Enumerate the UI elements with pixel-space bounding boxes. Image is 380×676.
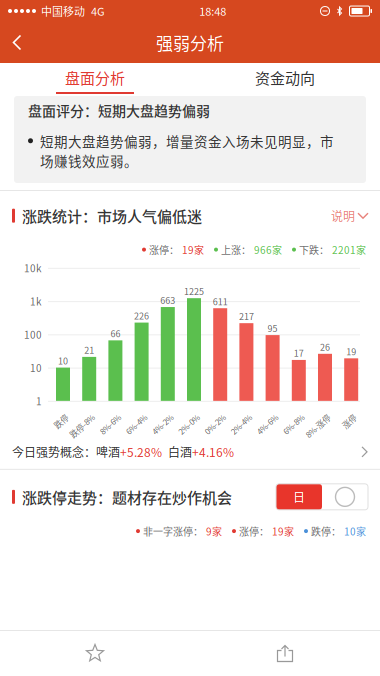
staticText: 95	[268, 322, 278, 335]
button[interactable]: Share	[263, 631, 307, 675]
staticText: 涨停：	[239, 524, 269, 538]
staticText: 10	[58, 354, 68, 367]
staticText: 663	[160, 293, 175, 306]
staticText: 19	[346, 345, 356, 358]
staticText: 涨停	[339, 410, 355, 422]
button[interactable]: 说明	[331, 201, 368, 230]
staticText: 10	[30, 360, 42, 375]
staticText: 10家	[344, 524, 366, 538]
staticText: 21	[84, 343, 94, 356]
staticText: 上涨：	[221, 242, 251, 257]
staticText: 资金动向	[255, 67, 315, 88]
staticText: 17	[294, 346, 304, 359]
staticText: 100	[24, 327, 42, 342]
staticText: 短期大盘趋势偏弱，增量资金入场未见明显，市场赚钱效应弱。	[40, 131, 334, 170]
staticText: 跌停	[51, 410, 67, 422]
staticText: 8%-涨停	[299, 410, 329, 422]
staticText: 8%-6%	[94, 410, 119, 422]
staticText: 19家	[182, 242, 204, 257]
staticText: 1225	[184, 285, 204, 298]
button[interactable]: Back	[0, 23, 34, 61]
staticText: 4%-6%	[252, 410, 277, 422]
staticText: 66	[110, 327, 120, 340]
staticText: 涨跌停走势：题材存在炒作机会	[22, 486, 232, 508]
staticText: 18:48	[199, 3, 226, 19]
staticText: 4%-2%	[147, 410, 172, 422]
staticText: 19家	[272, 524, 294, 538]
staticText: 611	[213, 295, 228, 308]
staticText: 白酒	[162, 443, 192, 461]
button[interactable]: 今日强势概念：	[0, 435, 380, 469]
staticText: 217	[239, 310, 254, 323]
button[interactable]: Refresh	[322, 484, 368, 510]
staticText: +5.28%	[120, 443, 162, 461]
staticText: 4G	[91, 3, 105, 19]
staticText: 强弱分析	[156, 30, 224, 55]
button[interactable]: Favorite	[73, 631, 117, 675]
staticText: 说明	[331, 207, 355, 224]
staticText: 2%-0%	[173, 410, 198, 422]
staticText: 1k	[30, 294, 42, 308]
staticText: 跌停-8%	[63, 410, 93, 422]
staticText: 盘面分析	[65, 67, 125, 88]
staticText: 中国移动	[41, 3, 85, 19]
staticText: 涨停：	[149, 242, 179, 257]
staticText: 1	[36, 394, 42, 408]
staticText: 6%-8%	[278, 410, 303, 422]
staticText: 今日强势概念：	[12, 443, 96, 461]
staticText: 10k	[24, 261, 42, 275]
staticText: 966家	[254, 242, 282, 257]
staticText: 日	[293, 488, 305, 506]
button[interactable]: 日	[276, 484, 322, 510]
button[interactable]: 盘面分析	[0, 63, 190, 96]
staticText: +4.16%	[192, 443, 234, 461]
staticText: 啤酒	[96, 443, 120, 461]
staticText: 226	[134, 309, 149, 322]
staticText: 2%-4%	[225, 410, 250, 422]
button[interactable]: 资金动向	[190, 63, 380, 96]
staticText: 2201家	[332, 242, 366, 257]
staticText: 9家	[206, 524, 222, 538]
staticText: 涨跌统计：市场人气偏低迷	[22, 205, 202, 226]
staticText: 6%-4%	[121, 410, 146, 422]
staticText: 非一字涨停：	[143, 524, 203, 538]
staticText: 0%-2%	[199, 410, 224, 422]
staticText: 盘面评分：短期大盘趋势偏弱	[28, 100, 210, 120]
staticText: 26	[320, 340, 330, 353]
staticText: 跌停：	[311, 524, 341, 538]
staticText: 下跌：	[299, 242, 329, 257]
